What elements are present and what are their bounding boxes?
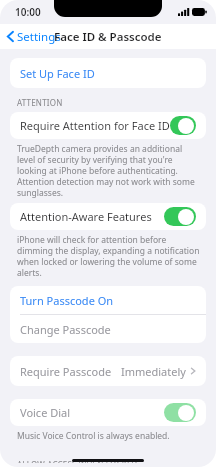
button[interactable]: Toggle xyxy=(164,403,196,422)
staticText: Require Passcode xyxy=(20,364,112,379)
staticText: Face ID & Passcode xyxy=(54,29,162,45)
staticText: Settings xyxy=(17,29,61,45)
button[interactable]: Toggle xyxy=(170,116,196,135)
button[interactable]: Set Up Face ID xyxy=(10,58,206,88)
button[interactable]: Turn Passcode On xyxy=(10,286,206,314)
staticText: Require Attention for Face ID xyxy=(20,118,170,133)
button[interactable]: Toggle xyxy=(164,207,196,226)
staticText: TrueDepth camera provides an additional … xyxy=(17,143,202,198)
staticText: iPhone will check for attention before d… xyxy=(17,234,202,278)
button[interactable]: Require Attention for Face ID xyxy=(10,112,206,139)
staticText: Change Passcode xyxy=(20,322,111,337)
staticText: Set Up Face ID xyxy=(20,66,95,81)
staticText: 10:00 xyxy=(15,5,41,19)
staticText: ATTENTION xyxy=(17,97,216,108)
button[interactable]: Settings xyxy=(0,24,65,49)
staticText: Music Voice Control is always enabled. xyxy=(17,430,202,442)
staticText: ALLOW ACCESS WHEN LOCKED: xyxy=(17,459,216,463)
staticText: Voice Dial xyxy=(20,405,71,420)
staticText: Immediately xyxy=(121,364,186,379)
staticText: Turn Passcode On xyxy=(20,293,114,308)
button[interactable]: Attention-Aware Features xyxy=(10,203,206,230)
button[interactable]: Change Passcode xyxy=(10,315,206,343)
button[interactable]: Voice Dial xyxy=(10,399,206,426)
button[interactable]: Require Passcode xyxy=(10,356,206,386)
staticText: Attention-Aware Features xyxy=(20,209,152,224)
